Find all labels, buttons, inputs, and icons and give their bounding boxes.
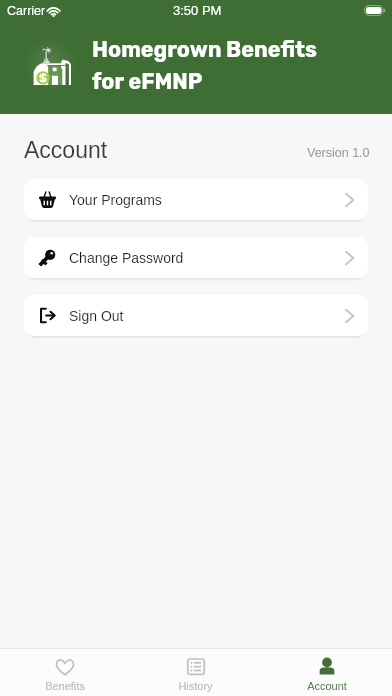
button[interactable]: Benefits [0, 649, 130, 696]
staticText: Carrier [7, 4, 46, 18]
button[interactable]: Change Password [24, 237, 368, 278]
staticText: Benefits [45, 680, 85, 692]
staticText: Homegrown Benefits [92, 37, 317, 62]
other: Homegrown Benefits logo [33, 47, 71, 85]
button[interactable]: Your Programs [24, 179, 368, 220]
other: Benefits [55, 658, 75, 676]
staticText: Account [307, 680, 347, 692]
button[interactable]: History [130, 649, 261, 696]
staticText: Change Password [69, 250, 184, 266]
staticText: Your Programs [69, 192, 162, 208]
button[interactable]: Account [261, 649, 392, 696]
staticText: for eFMNP [92, 69, 203, 94]
staticText: Version 1.0 [307, 146, 370, 160]
other: Account [317, 658, 337, 676]
button[interactable]: Sign Out [24, 295, 368, 336]
staticText: Account [24, 137, 108, 163]
staticText: 3:50 PM [173, 3, 222, 18]
staticText: Sign Out [69, 308, 124, 324]
other: History [186, 658, 206, 676]
staticText: History [178, 680, 213, 692]
